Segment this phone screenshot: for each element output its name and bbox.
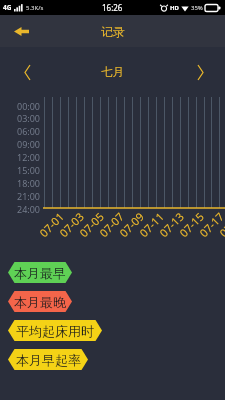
- staticText: 16:26: [102, 2, 123, 13]
- staticText: 七月: [101, 65, 124, 79]
- staticText: 07-05: [76, 209, 107, 240]
- staticText: 07-15: [176, 209, 207, 240]
- staticText: 35%: [191, 4, 203, 12]
- button[interactable]: 本月最晚: [8, 291, 72, 312]
- staticText: 07-03: [56, 209, 87, 240]
- staticText: 07-09: [116, 209, 147, 240]
- staticText: 00:00: [17, 100, 41, 112]
- staticText: 07-13: [156, 209, 187, 240]
- staticText: 06:00: [17, 125, 41, 137]
- staticText: 07-11: [136, 209, 167, 240]
- staticText: 平均起床用时: [16, 323, 94, 339]
- staticText: 07-17: [196, 209, 225, 240]
- staticText: 07-07: [96, 209, 127, 240]
- staticText: 15:00: [17, 164, 41, 176]
- staticText: 本月最早: [14, 265, 66, 281]
- staticText: 记录: [101, 24, 125, 39]
- button[interactable]: 本月早起率: [8, 349, 88, 370]
- staticText: 07-01: [36, 209, 67, 240]
- staticText: 21:00: [17, 190, 41, 202]
- staticText: 12:00: [17, 151, 41, 163]
- staticText: 18:00: [17, 177, 41, 189]
- button[interactable]: 平均起床用时: [8, 320, 102, 341]
- staticText: 本月最晚: [14, 294, 66, 310]
- staticText: 07-19: [216, 209, 225, 240]
- button[interactable]: 本月最早: [8, 262, 72, 283]
- staticText: 09:00: [17, 138, 41, 150]
- staticText: 4G: [3, 3, 12, 12]
- staticText: 03:00: [17, 112, 41, 124]
- staticText: HD: [170, 4, 179, 12]
- button[interactable]: Next month: [187, 59, 213, 85]
- button[interactable]: Back: [4, 15, 38, 47]
- staticText: 5.3K/s: [26, 4, 44, 12]
- staticText: 本月早起率: [16, 352, 81, 368]
- staticText: 24:00: [17, 203, 41, 215]
- button[interactable]: Previous month: [14, 59, 40, 85]
